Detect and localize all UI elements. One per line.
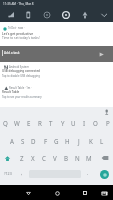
staticText: , bbox=[21, 170, 23, 177]
staticText: . bbox=[87, 170, 89, 177]
button[interactable]: Shift bbox=[0, 152, 14, 164]
staticText: T bbox=[49, 119, 53, 127]
staticText: D bbox=[31, 137, 36, 145]
button[interactable]: C bbox=[38, 152, 49, 164]
staticText: TriDot · now · bbox=[8, 26, 25, 30]
button[interactable]: N bbox=[72, 152, 83, 164]
staticText: F bbox=[44, 137, 48, 145]
button[interactable]: Add a task bbox=[0, 46, 113, 62]
button[interactable]: Android System bbox=[0, 62, 113, 84]
button[interactable]: Z bbox=[16, 152, 27, 164]
button[interactable]: P bbox=[102, 117, 113, 129]
button[interactable]: Enter bbox=[100, 170, 109, 179]
button[interactable]: M bbox=[83, 152, 94, 164]
staticText: H bbox=[65, 137, 70, 145]
staticText: R bbox=[38, 119, 42, 127]
button[interactable]: A bbox=[6, 135, 17, 147]
staticText: K bbox=[89, 137, 93, 145]
button[interactable]: D bbox=[28, 135, 39, 147]
button[interactable]: , bbox=[17, 166, 27, 180]
staticText: U bbox=[71, 119, 76, 127]
button[interactable]: F bbox=[40, 135, 51, 147]
button[interactable]: E bbox=[23, 117, 34, 129]
staticText: I bbox=[83, 119, 86, 127]
button[interactable]: Backspace bbox=[98, 152, 112, 164]
button[interactable]: G bbox=[51, 135, 62, 147]
staticText: M bbox=[86, 154, 92, 162]
staticText: A bbox=[10, 137, 14, 145]
button[interactable]: V bbox=[49, 152, 60, 164]
button[interactable]: ?123 bbox=[0, 166, 16, 180]
staticText: V bbox=[53, 154, 57, 162]
staticText: Y bbox=[61, 119, 65, 127]
staticText: Result Table · 1m · bbox=[9, 86, 32, 90]
staticText: Tap to see your results summary bbox=[2, 95, 42, 99]
button[interactable]: Recents bbox=[78, 186, 92, 200]
button[interactable]: X bbox=[27, 152, 38, 164]
staticText: J bbox=[78, 137, 80, 145]
button[interactable]: . bbox=[83, 166, 93, 180]
staticText: Add a task bbox=[4, 51, 20, 55]
staticText: N bbox=[75, 154, 80, 162]
staticText: E bbox=[27, 119, 31, 127]
staticText: Q bbox=[3, 119, 8, 127]
staticText: C bbox=[42, 154, 46, 162]
button[interactable]: Back bbox=[21, 186, 35, 200]
button[interactable]: J bbox=[73, 135, 84, 147]
staticText: X bbox=[31, 154, 35, 162]
staticText: Result Table bbox=[2, 90, 20, 94]
button[interactable]: Home bbox=[50, 186, 64, 200]
staticText: Time to set today's tasks! bbox=[2, 36, 40, 40]
button[interactable]: TriDot · now · bbox=[0, 22, 113, 46]
staticText: O bbox=[93, 119, 98, 127]
button[interactable]: R bbox=[34, 117, 45, 129]
button[interactable]: S bbox=[17, 135, 28, 147]
staticText: S bbox=[21, 137, 25, 145]
staticText: Android System bbox=[9, 65, 29, 69]
button[interactable]: Q bbox=[0, 117, 11, 129]
staticText: B bbox=[64, 154, 69, 162]
staticText: W bbox=[14, 119, 20, 127]
button[interactable]: W bbox=[11, 117, 22, 129]
staticText: L bbox=[100, 137, 104, 145]
button[interactable]: L bbox=[96, 135, 107, 147]
button[interactable]: Y bbox=[57, 117, 68, 129]
button[interactable]: K bbox=[85, 135, 96, 147]
button[interactable]: T bbox=[45, 117, 56, 129]
staticText: USB debugging connected bbox=[2, 69, 40, 73]
staticText: 11:35 AM · Thu, Mar 8 bbox=[3, 2, 34, 6]
button[interactable]: H bbox=[62, 135, 73, 147]
staticText: Let's get productive bbox=[2, 31, 34, 35]
staticText: P bbox=[106, 119, 110, 127]
button[interactable]: Result Table · 1m · bbox=[0, 84, 113, 106]
button[interactable]: B bbox=[61, 152, 72, 164]
staticText: Z bbox=[20, 154, 24, 162]
button[interactable]: Switch keyboard bbox=[98, 187, 110, 199]
button[interactable]: O bbox=[90, 117, 101, 129]
button[interactable]: I bbox=[79, 117, 90, 129]
staticText: G bbox=[54, 137, 59, 145]
button[interactable]: Send bbox=[95, 48, 107, 60]
button[interactable]: U bbox=[68, 117, 79, 129]
staticText: ?123 bbox=[4, 171, 12, 176]
staticText: Tap to disable USB debugging bbox=[2, 74, 40, 78]
